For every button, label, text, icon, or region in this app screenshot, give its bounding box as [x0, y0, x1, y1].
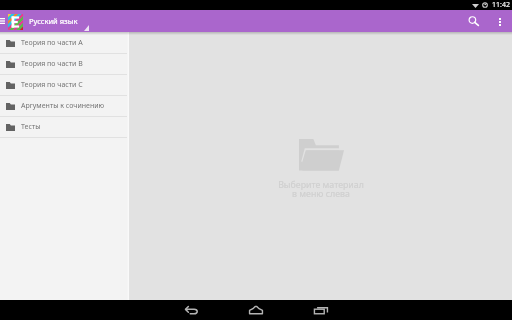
button[interactable]: Аргументы к сочинению	[0, 96, 129, 116]
button[interactable]: Recent apps	[301, 300, 341, 320]
button[interactable]: Open navigation drawer	[0, 10, 7, 32]
staticText: Теория по части B	[21, 59, 83, 69]
staticText: Аргументы к сочинению	[21, 101, 105, 111]
staticText: Теория по части A	[21, 38, 83, 48]
button[interactable]: Теория по части B	[0, 54, 129, 74]
button[interactable]: More options	[489, 10, 509, 32]
button[interactable]: Back	[171, 300, 211, 320]
button[interactable]: Теория по части C	[0, 75, 129, 95]
button[interactable]: Тесты	[0, 117, 129, 137]
button[interactable]: Home	[236, 300, 276, 320]
staticText: Русский язык	[29, 16, 78, 26]
staticText: 11:42	[492, 0, 510, 10]
staticText: Тесты	[21, 122, 41, 132]
staticText: Выберите материал в меню слева	[278, 179, 364, 200]
staticText: Теория по части C	[21, 80, 83, 90]
button[interactable]: Теория по части A	[0, 33, 129, 53]
button[interactable]: Search	[463, 10, 489, 32]
